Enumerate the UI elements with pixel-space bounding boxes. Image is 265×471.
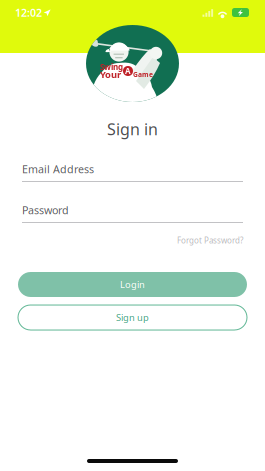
button[interactable]: Forgot Password? xyxy=(177,235,243,246)
staticText: Password xyxy=(22,203,69,217)
staticText: Sign in xyxy=(107,118,158,140)
staticText: Forgot Password? xyxy=(177,235,243,246)
staticText: Game xyxy=(133,70,153,79)
staticText: Your xyxy=(100,68,121,81)
staticText: A xyxy=(125,66,131,76)
button[interactable]: Login xyxy=(18,272,247,297)
button[interactable]: Sign up xyxy=(18,305,247,330)
staticText: Email Address xyxy=(22,162,94,176)
staticText: Sign up xyxy=(116,311,149,324)
staticText: Login xyxy=(120,278,145,291)
staticText: Swing xyxy=(100,62,123,72)
staticText: 12:02 xyxy=(15,5,42,20)
